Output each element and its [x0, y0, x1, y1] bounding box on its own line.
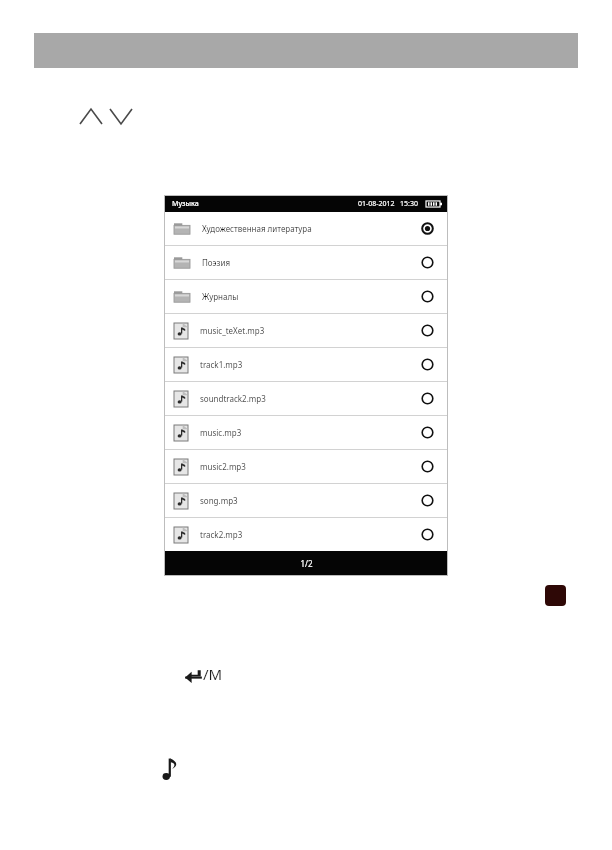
button[interactable]: Music: [159, 757, 181, 783]
button[interactable]: Back slash M key: [184, 662, 223, 686]
button[interactable]: music_teXet.mp3: [164, 314, 448, 347]
staticText: music_teXet.mp3: [200, 325, 421, 336]
button[interactable]: Red key indicator: [545, 585, 566, 606]
button[interactable]: Not selected: [421, 392, 434, 405]
button[interactable]: soundtrack2.mp3: [164, 382, 448, 415]
button[interactable]: music.mp3: [164, 416, 448, 449]
button[interactable]: Up and down navigation keys: [78, 104, 134, 130]
button[interactable]: track1.mp3: [164, 348, 448, 381]
button[interactable]: Not selected: [421, 494, 434, 507]
button[interactable]: track2.mp3: [164, 518, 448, 551]
staticText: soundtrack2.mp3: [200, 393, 421, 404]
button[interactable]: Selected: [421, 222, 434, 235]
button[interactable]: Not selected: [421, 460, 434, 473]
staticText: music.mp3: [200, 427, 421, 438]
button[interactable]: Поэзия: [164, 246, 448, 279]
button[interactable]: Not selected: [421, 426, 434, 439]
staticText: Музыка: [172, 199, 199, 209]
button[interactable]: Not selected: [421, 358, 434, 371]
staticText: /M: [203, 664, 223, 684]
button[interactable]: Художественная литература: [164, 212, 448, 245]
staticText: song.mp3: [200, 495, 421, 506]
staticText: track1.mp3: [200, 359, 421, 370]
button[interactable]: Not selected: [421, 528, 434, 541]
staticText: 1/2: [300, 558, 313, 569]
staticText: 01-08-2012 15:30: [358, 199, 418, 209]
staticText: Художественная литература: [202, 223, 421, 234]
button[interactable]: Not selected: [421, 256, 434, 269]
button[interactable]: song.mp3: [164, 484, 448, 517]
staticText: Поэзия: [202, 257, 421, 268]
button[interactable]: Журналы: [164, 280, 448, 313]
button[interactable]: Not selected: [421, 290, 434, 303]
button[interactable]: Not selected: [421, 324, 434, 337]
staticText: Журналы: [202, 291, 421, 302]
staticText: track2.mp3: [200, 529, 421, 540]
staticText: music2.mp3: [200, 461, 421, 472]
button[interactable]: music2.mp3: [164, 450, 448, 483]
